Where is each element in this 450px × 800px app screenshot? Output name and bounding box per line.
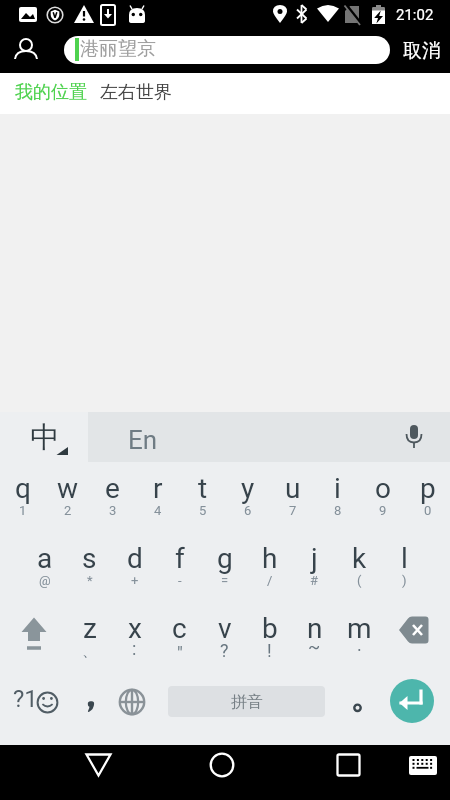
staticText: f (175, 542, 185, 575)
button[interactable]: 我的位置 (0, 73, 72, 96)
button[interactable]: f (157, 532, 202, 602)
staticText: j (311, 542, 318, 575)
button[interactable] (118, 688, 146, 716)
staticText: ~ (308, 636, 321, 657)
button[interactable]: y (225, 462, 270, 532)
staticText: g (217, 542, 233, 575)
staticText: / (267, 573, 273, 588)
staticText: 1 (19, 503, 27, 518)
staticText: o (375, 472, 391, 505)
button[interactable]: x (112, 602, 157, 672)
staticText: 我的位置 (15, 81, 87, 104)
button[interactable] (347, 697, 368, 718)
staticText: 7 (289, 503, 297, 518)
button[interactable]: p (405, 462, 450, 532)
staticText: e (105, 472, 120, 505)
staticText: l (401, 542, 408, 575)
staticText: b (262, 612, 278, 645)
staticText: ! (267, 640, 272, 661)
staticText: ( (357, 573, 362, 588)
staticText: x (128, 612, 142, 645)
button[interactable]: s (67, 532, 112, 602)
button[interactable] (0, 602, 67, 672)
button[interactable] (401, 424, 427, 450)
staticText: ?1 (13, 685, 38, 713)
staticText: y (241, 472, 255, 505)
button[interactable]: e (90, 462, 135, 532)
staticText: " (177, 643, 183, 664)
button[interactable] (390, 679, 434, 723)
staticText: q (15, 472, 31, 505)
button[interactable] (0, 28, 45, 73)
staticText: . (357, 634, 362, 655)
staticText: d (127, 542, 143, 575)
staticText: u (285, 472, 301, 505)
button[interactable]: 左右世界 (100, 81, 172, 104)
staticText: * (87, 573, 93, 588)
button[interactable]: w (45, 462, 90, 532)
staticText: v (218, 612, 232, 645)
staticText: i (334, 472, 341, 505)
button[interactable]: v (202, 602, 247, 672)
staticText: 中 (30, 419, 59, 456)
button[interactable]: b (247, 602, 292, 672)
staticText: 4 (154, 503, 162, 518)
staticText: 、 (82, 642, 97, 661)
staticText: r (153, 472, 163, 505)
button[interactable]: r (135, 462, 180, 532)
staticText: 3 (109, 503, 117, 518)
staticText: 8 (334, 503, 342, 518)
staticText: ? (220, 640, 229, 661)
staticText: h (262, 542, 278, 575)
button[interactable]: j (292, 532, 337, 602)
staticText: 0 (424, 503, 432, 518)
button[interactable] (80, 697, 102, 719)
staticText: ) (402, 573, 407, 588)
button[interactable]: En (128, 425, 158, 455)
staticText: # (310, 573, 319, 588)
staticText: : (132, 638, 137, 659)
button[interactable]: m (337, 602, 382, 672)
button[interactable]: q (0, 462, 45, 532)
button[interactable] (76, 745, 121, 785)
staticText: - (178, 573, 182, 588)
button[interactable]: d (112, 532, 157, 602)
staticText: 21:02 (396, 6, 434, 24)
staticText: 取消 (403, 39, 441, 63)
button[interactable]: h (247, 532, 292, 602)
button[interactable] (382, 602, 450, 672)
button[interactable] (403, 745, 443, 785)
button[interactable]: z (67, 602, 112, 672)
button[interactable]: 港丽望京 (64, 36, 390, 64)
button[interactable]: 拼音 (168, 686, 325, 717)
button[interactable]: 中 (0, 412, 88, 462)
staticText: w (57, 472, 79, 505)
button[interactable]: i (315, 462, 360, 532)
staticText: m (347, 612, 372, 645)
button[interactable]: k (337, 532, 382, 602)
button[interactable]: ?1 (0, 672, 68, 742)
button[interactable]: n (292, 602, 337, 672)
staticText: t (198, 472, 208, 505)
button[interactable] (326, 745, 371, 785)
button[interactable]: c (157, 602, 202, 672)
staticText: z (83, 612, 97, 645)
staticText: n (307, 612, 323, 645)
button[interactable]: o (360, 462, 405, 532)
staticText: 5 (199, 503, 207, 518)
staticText: c (172, 612, 187, 645)
staticText: s (82, 542, 97, 575)
staticText: 2 (64, 503, 72, 518)
button[interactable] (200, 745, 245, 785)
button[interactable]: 取消 (394, 28, 450, 73)
staticText: 6 (244, 503, 252, 518)
button[interactable]: g (202, 532, 247, 602)
button[interactable]: t (180, 462, 225, 532)
button[interactable]: l (382, 532, 427, 602)
staticText: + (131, 573, 139, 588)
staticText: 拼音 (231, 692, 263, 712)
button[interactable]: a (22, 532, 67, 602)
staticText: p (420, 472, 436, 505)
button[interactable]: u (270, 462, 315, 532)
staticText: 9 (379, 503, 387, 518)
